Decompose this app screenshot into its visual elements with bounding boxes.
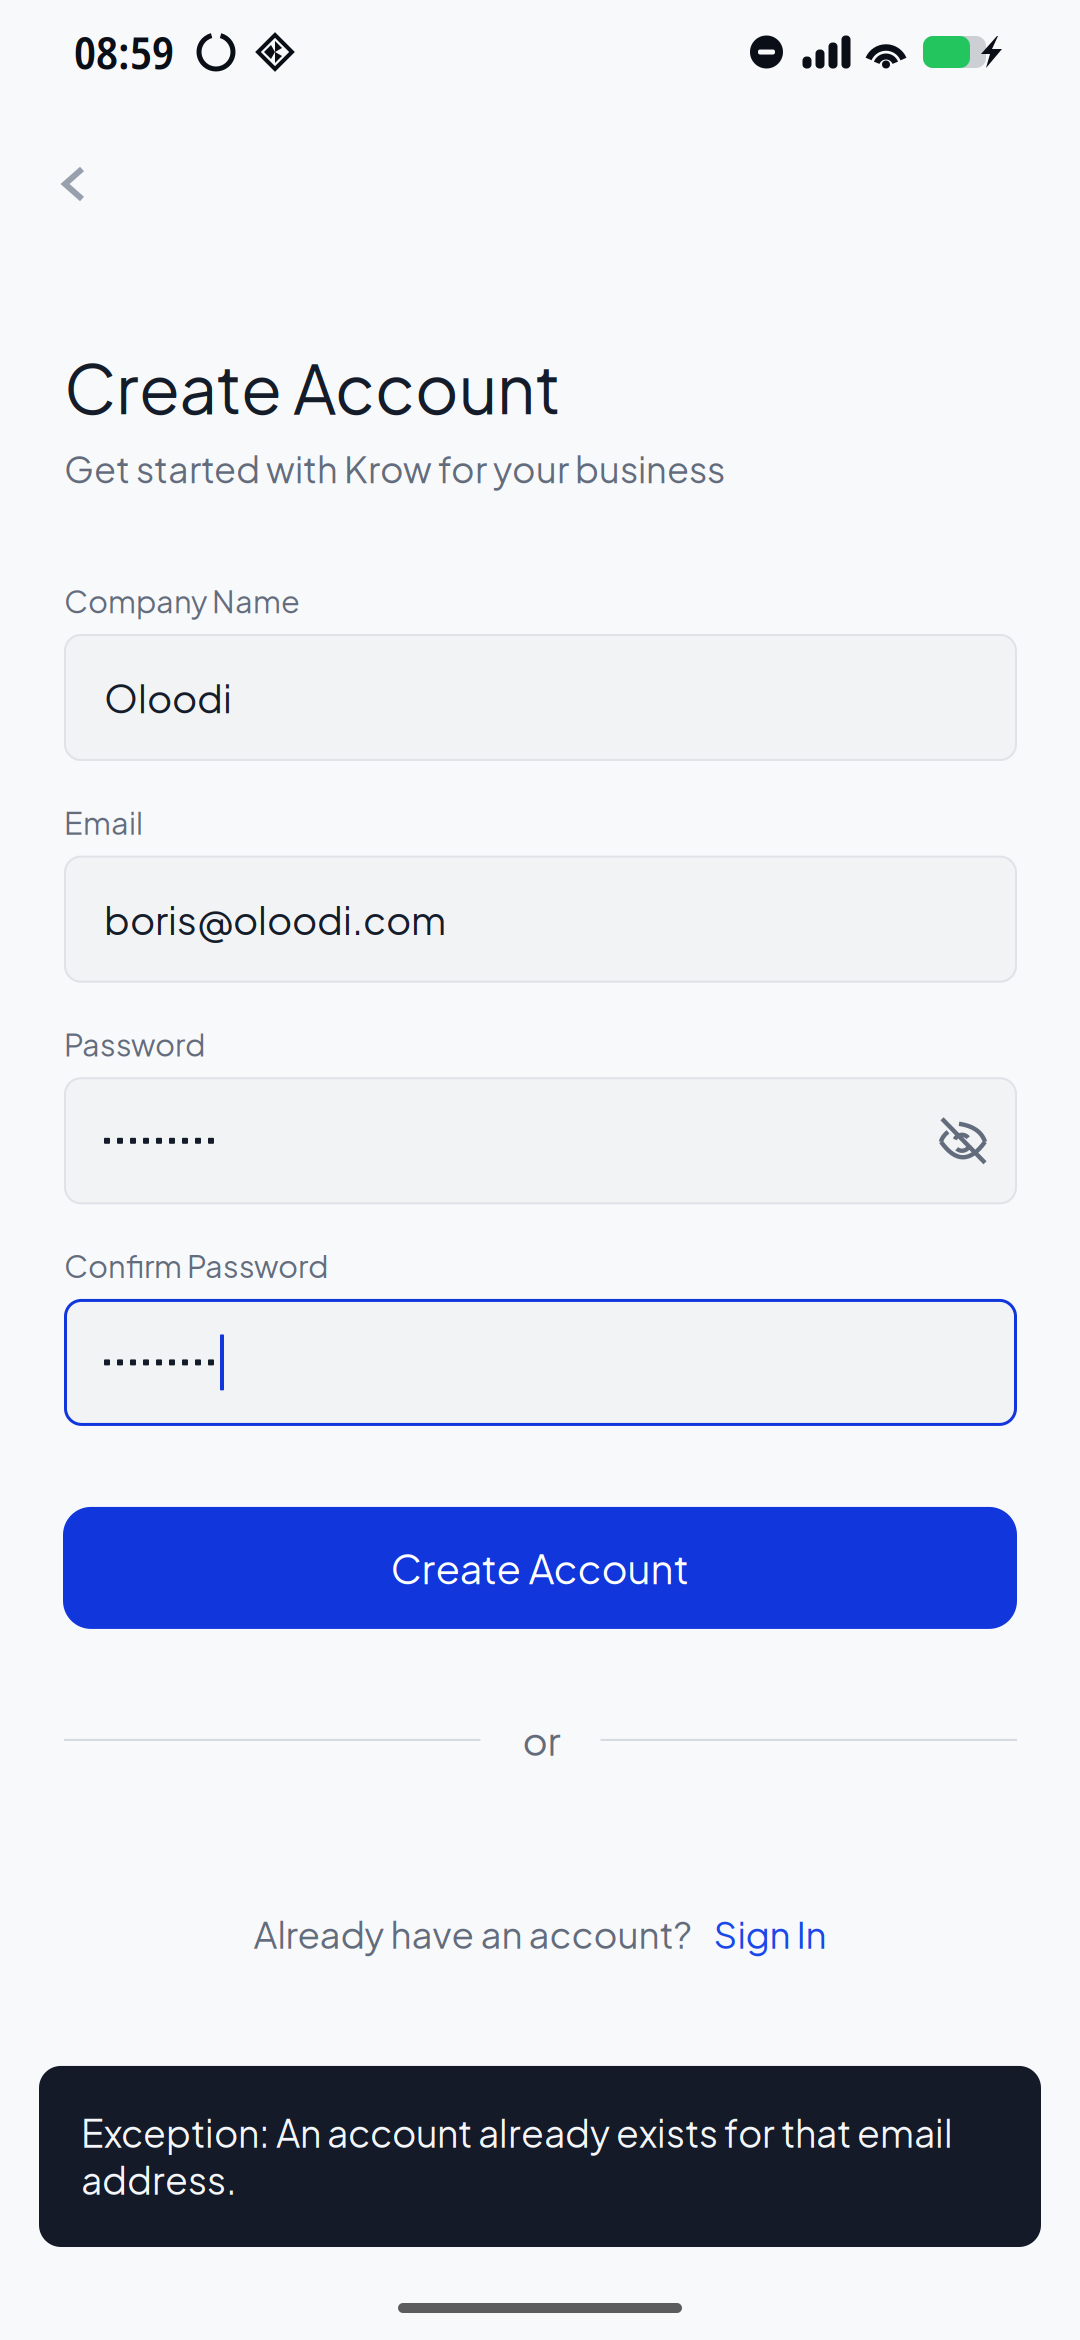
- staticText: Get started with Krow for your business: [64, 446, 725, 491]
- staticText: Confirm Password: [64, 1246, 328, 1285]
- button[interactable]: Back: [0, 104, 126, 229]
- button[interactable]: Sign In: [713, 1911, 826, 1957]
- button[interactable]: Show password: [939, 1117, 987, 1165]
- staticText: Oloodi: [104, 673, 232, 722]
- staticText: boris@oloodi.com: [104, 895, 446, 943]
- button[interactable]: Create Account: [63, 1507, 1017, 1629]
- staticText: Create Account: [64, 345, 561, 429]
- staticText: Sign In: [713, 1911, 826, 1957]
- staticText: Password: [64, 1025, 205, 1063]
- staticText: Email: [64, 803, 143, 842]
- staticText: 08:59: [74, 21, 174, 83]
- staticText: Already have an account?: [253, 1911, 691, 1957]
- staticText: Create Account: [390, 1543, 689, 1593]
- staticText: Exception: An account already exists for…: [81, 2109, 953, 2203]
- staticText: Company Name: [64, 581, 300, 620]
- staticText: or: [522, 1716, 560, 1764]
